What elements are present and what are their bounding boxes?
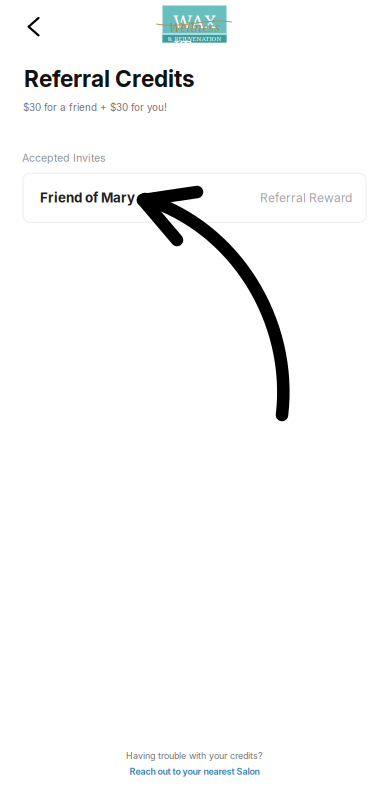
staticText: Referral Credits: [24, 65, 195, 92]
staticText: Reach out to your nearest Salon: [129, 766, 259, 777]
button[interactable]: Friend of Mary: [23, 173, 366, 222]
staticText: $30 for a friend + $30 for you!: [23, 101, 167, 113]
staticText: & REJUVENATION: [167, 34, 221, 43]
staticText: Accepted Invites: [22, 151, 106, 164]
staticText: Referral Reward: [260, 190, 352, 205]
button[interactable]: Back: [7, 4, 53, 50]
staticText: Having trouble with your credits?: [126, 750, 263, 761]
staticText: Friend of Mary: [40, 190, 135, 206]
staticText: Wellness: [168, 18, 220, 36]
button[interactable]: Reach out to your nearest Salon: [129, 766, 259, 777]
staticText: WAX IT: [173, 8, 216, 59]
